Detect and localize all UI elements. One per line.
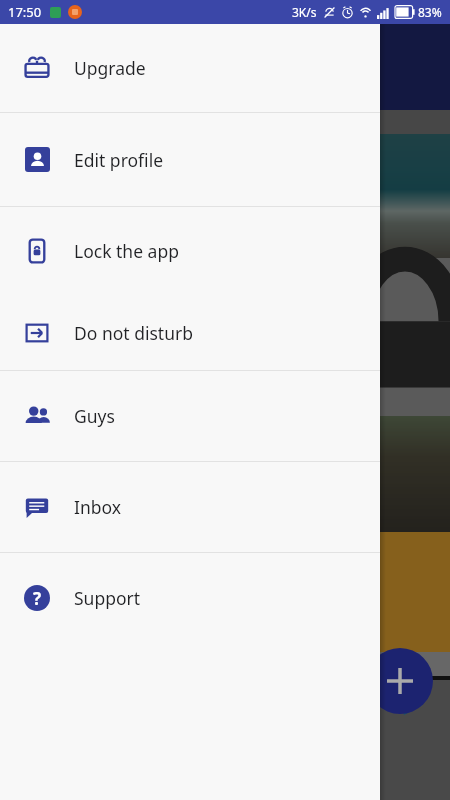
button[interactable]: ?: [0, 553, 380, 643]
staticText: Inbox: [74, 495, 122, 519]
button[interactable]: Lock the app: [0, 207, 380, 295]
staticText: Do not disturb: [74, 321, 193, 345]
staticText: Upgrade: [74, 56, 146, 80]
button[interactable]: Add: [367, 648, 433, 714]
staticText: Support: [74, 586, 141, 610]
button[interactable]: Do not disturb: [0, 295, 380, 370]
button[interactable]: Guys: [0, 371, 380, 461]
button[interactable]: Inbox: [0, 462, 380, 552]
staticText: Lock the app: [74, 239, 179, 263]
staticText: 17:50: [8, 3, 42, 21]
staticText: Guys: [74, 404, 115, 428]
staticText: ?: [33, 587, 42, 610]
button[interactable]: Edit profile: [0, 113, 380, 206]
button[interactable]: Upgrade: [0, 24, 380, 112]
staticText: 83%: [418, 4, 442, 20]
staticText: 3K/s: [292, 4, 317, 20]
staticText: Edit profile: [74, 148, 164, 172]
